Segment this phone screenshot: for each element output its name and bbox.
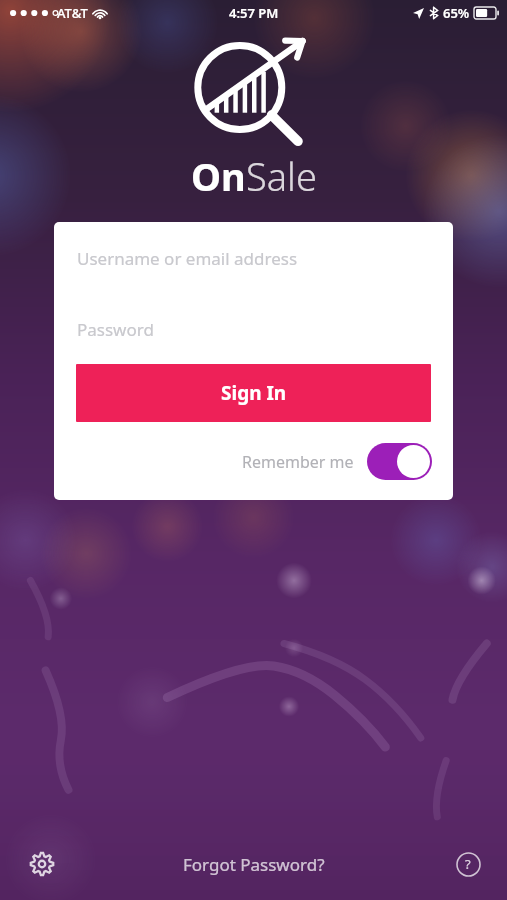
button[interactable]: Remember me <box>242 443 432 480</box>
button[interactable]: Username or email address <box>54 222 453 294</box>
button[interactable]: Forgot Password? <box>175 845 333 884</box>
button[interactable]: Sign In <box>76 364 431 422</box>
staticText: Remember me <box>242 451 354 473</box>
staticText: Forgot Password? <box>183 853 325 876</box>
button[interactable]: Help <box>451 847 485 881</box>
staticText: Username or email address <box>77 247 298 270</box>
staticText: Password <box>77 318 154 341</box>
staticText: Sale <box>246 150 317 202</box>
staticText: AT&T <box>57 4 88 22</box>
staticText: 65% <box>443 4 470 22</box>
staticText: 4:57 PM <box>229 4 279 22</box>
button[interactable]: Settings <box>24 846 60 882</box>
staticText: Sign In <box>221 380 287 406</box>
staticText: ? <box>465 855 471 873</box>
staticText: On <box>191 150 246 202</box>
button[interactable]: Password <box>54 294 453 364</box>
